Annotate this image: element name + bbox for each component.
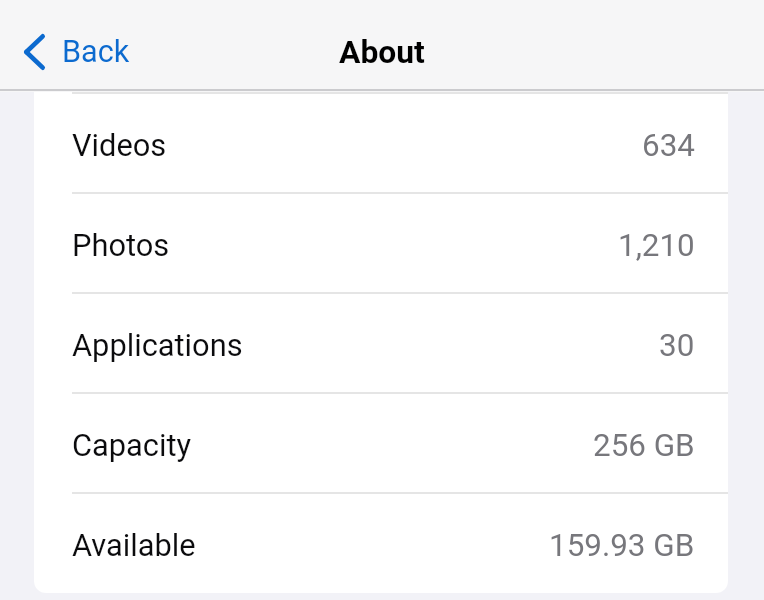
staticText: 256 GB xyxy=(593,427,695,464)
staticText: 1,210 xyxy=(618,227,695,264)
button[interactable]: Available xyxy=(34,494,728,592)
staticText: 159.93 GB xyxy=(549,527,695,564)
staticText: Applications xyxy=(72,327,243,363)
staticText: 634 xyxy=(642,127,695,164)
staticText: Videos xyxy=(72,127,167,163)
staticText: Available xyxy=(72,527,196,563)
staticText: About xyxy=(339,33,425,70)
button[interactable]: Videos xyxy=(34,94,728,192)
button[interactable]: Photos xyxy=(34,194,728,292)
staticText: Back xyxy=(62,34,130,70)
button[interactable]: Back xyxy=(18,26,136,78)
staticText: Photos xyxy=(72,227,170,263)
staticText: Capacity xyxy=(72,427,192,463)
staticText: 30 xyxy=(659,327,695,364)
button[interactable]: Capacity xyxy=(34,394,728,492)
button[interactable]: Applications xyxy=(34,294,728,392)
